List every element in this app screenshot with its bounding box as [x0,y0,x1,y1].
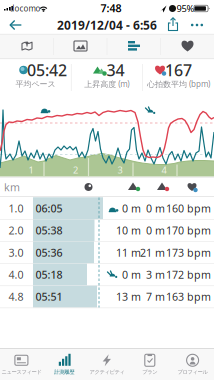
staticText: 2019/12/04 - 6:56 [57,17,157,33]
staticText: 34 [106,59,124,81]
staticText: 0 m [122,201,141,215]
staticText: 0 m [146,223,165,237]
button[interactable]: 計測履歴 [41,349,88,380]
staticText: 3.0 [8,245,23,260]
staticText: 13 m [116,290,141,304]
staticText: 05:36 [35,245,62,260]
staticText: 1.0 [8,201,23,215]
button[interactable]: Heart rate [181,40,193,51]
staticText: 7:48 [100,1,121,15]
staticText: 170 bpm [166,223,211,237]
staticText: 05:51 [35,290,62,304]
staticText: アクティビティ [89,369,124,375]
staticText: 4.0 [8,267,23,282]
button[interactable]: Splits [127,39,141,53]
button[interactable]: Back [6,16,26,34]
staticText: 21 m [140,245,165,260]
staticText: 167 [165,59,192,81]
staticText: 上昇高度 (m) [84,79,129,89]
staticText: 05:18 [35,267,62,282]
staticText: 2 [73,164,78,176]
staticText: 05:42 [27,59,67,81]
button[interactable]: プラン [126,349,173,380]
staticText: docomo [9,3,40,14]
staticText: 160 bpm [166,201,211,215]
staticText: 平均ペース [16,79,56,89]
button[interactable]: ニュースフィード [0,349,45,380]
staticText: 0 m [122,267,141,282]
staticText: 10 m [116,223,141,237]
button[interactable]: Share [164,15,182,33]
staticText: プラン [142,369,157,375]
staticText: 172 bpm [166,267,211,282]
button[interactable]: アクティビティ [83,349,130,380]
staticText: 1 [28,164,33,176]
staticText: 95% [176,2,194,15]
staticText: 3 m [146,267,165,282]
button[interactable]: More [188,16,206,34]
staticText: 計測履歴 [54,369,74,375]
staticText: 心拍数平均 (bpm) [147,79,210,89]
staticText: 05:38 [35,223,62,237]
staticText: ニュースフィード [1,369,41,375]
button[interactable]: Photos [73,39,87,53]
staticText: 4 [161,164,166,176]
staticText: km [4,180,20,194]
staticText: プロフィール [178,369,208,375]
button[interactable]: Map [20,39,34,53]
staticText: 173 bpm [166,245,211,260]
staticText: 06:05 [35,201,62,215]
button[interactable]: プロフィール [169,349,214,380]
staticText: 11 m [116,245,141,260]
staticText: 0 m [146,201,165,215]
staticText: 7 m [146,290,165,304]
staticText: 2.0 [8,223,23,237]
staticText: 163 bpm [166,290,211,304]
staticText: 3 [117,164,122,176]
staticText: 4.8 [8,290,23,304]
